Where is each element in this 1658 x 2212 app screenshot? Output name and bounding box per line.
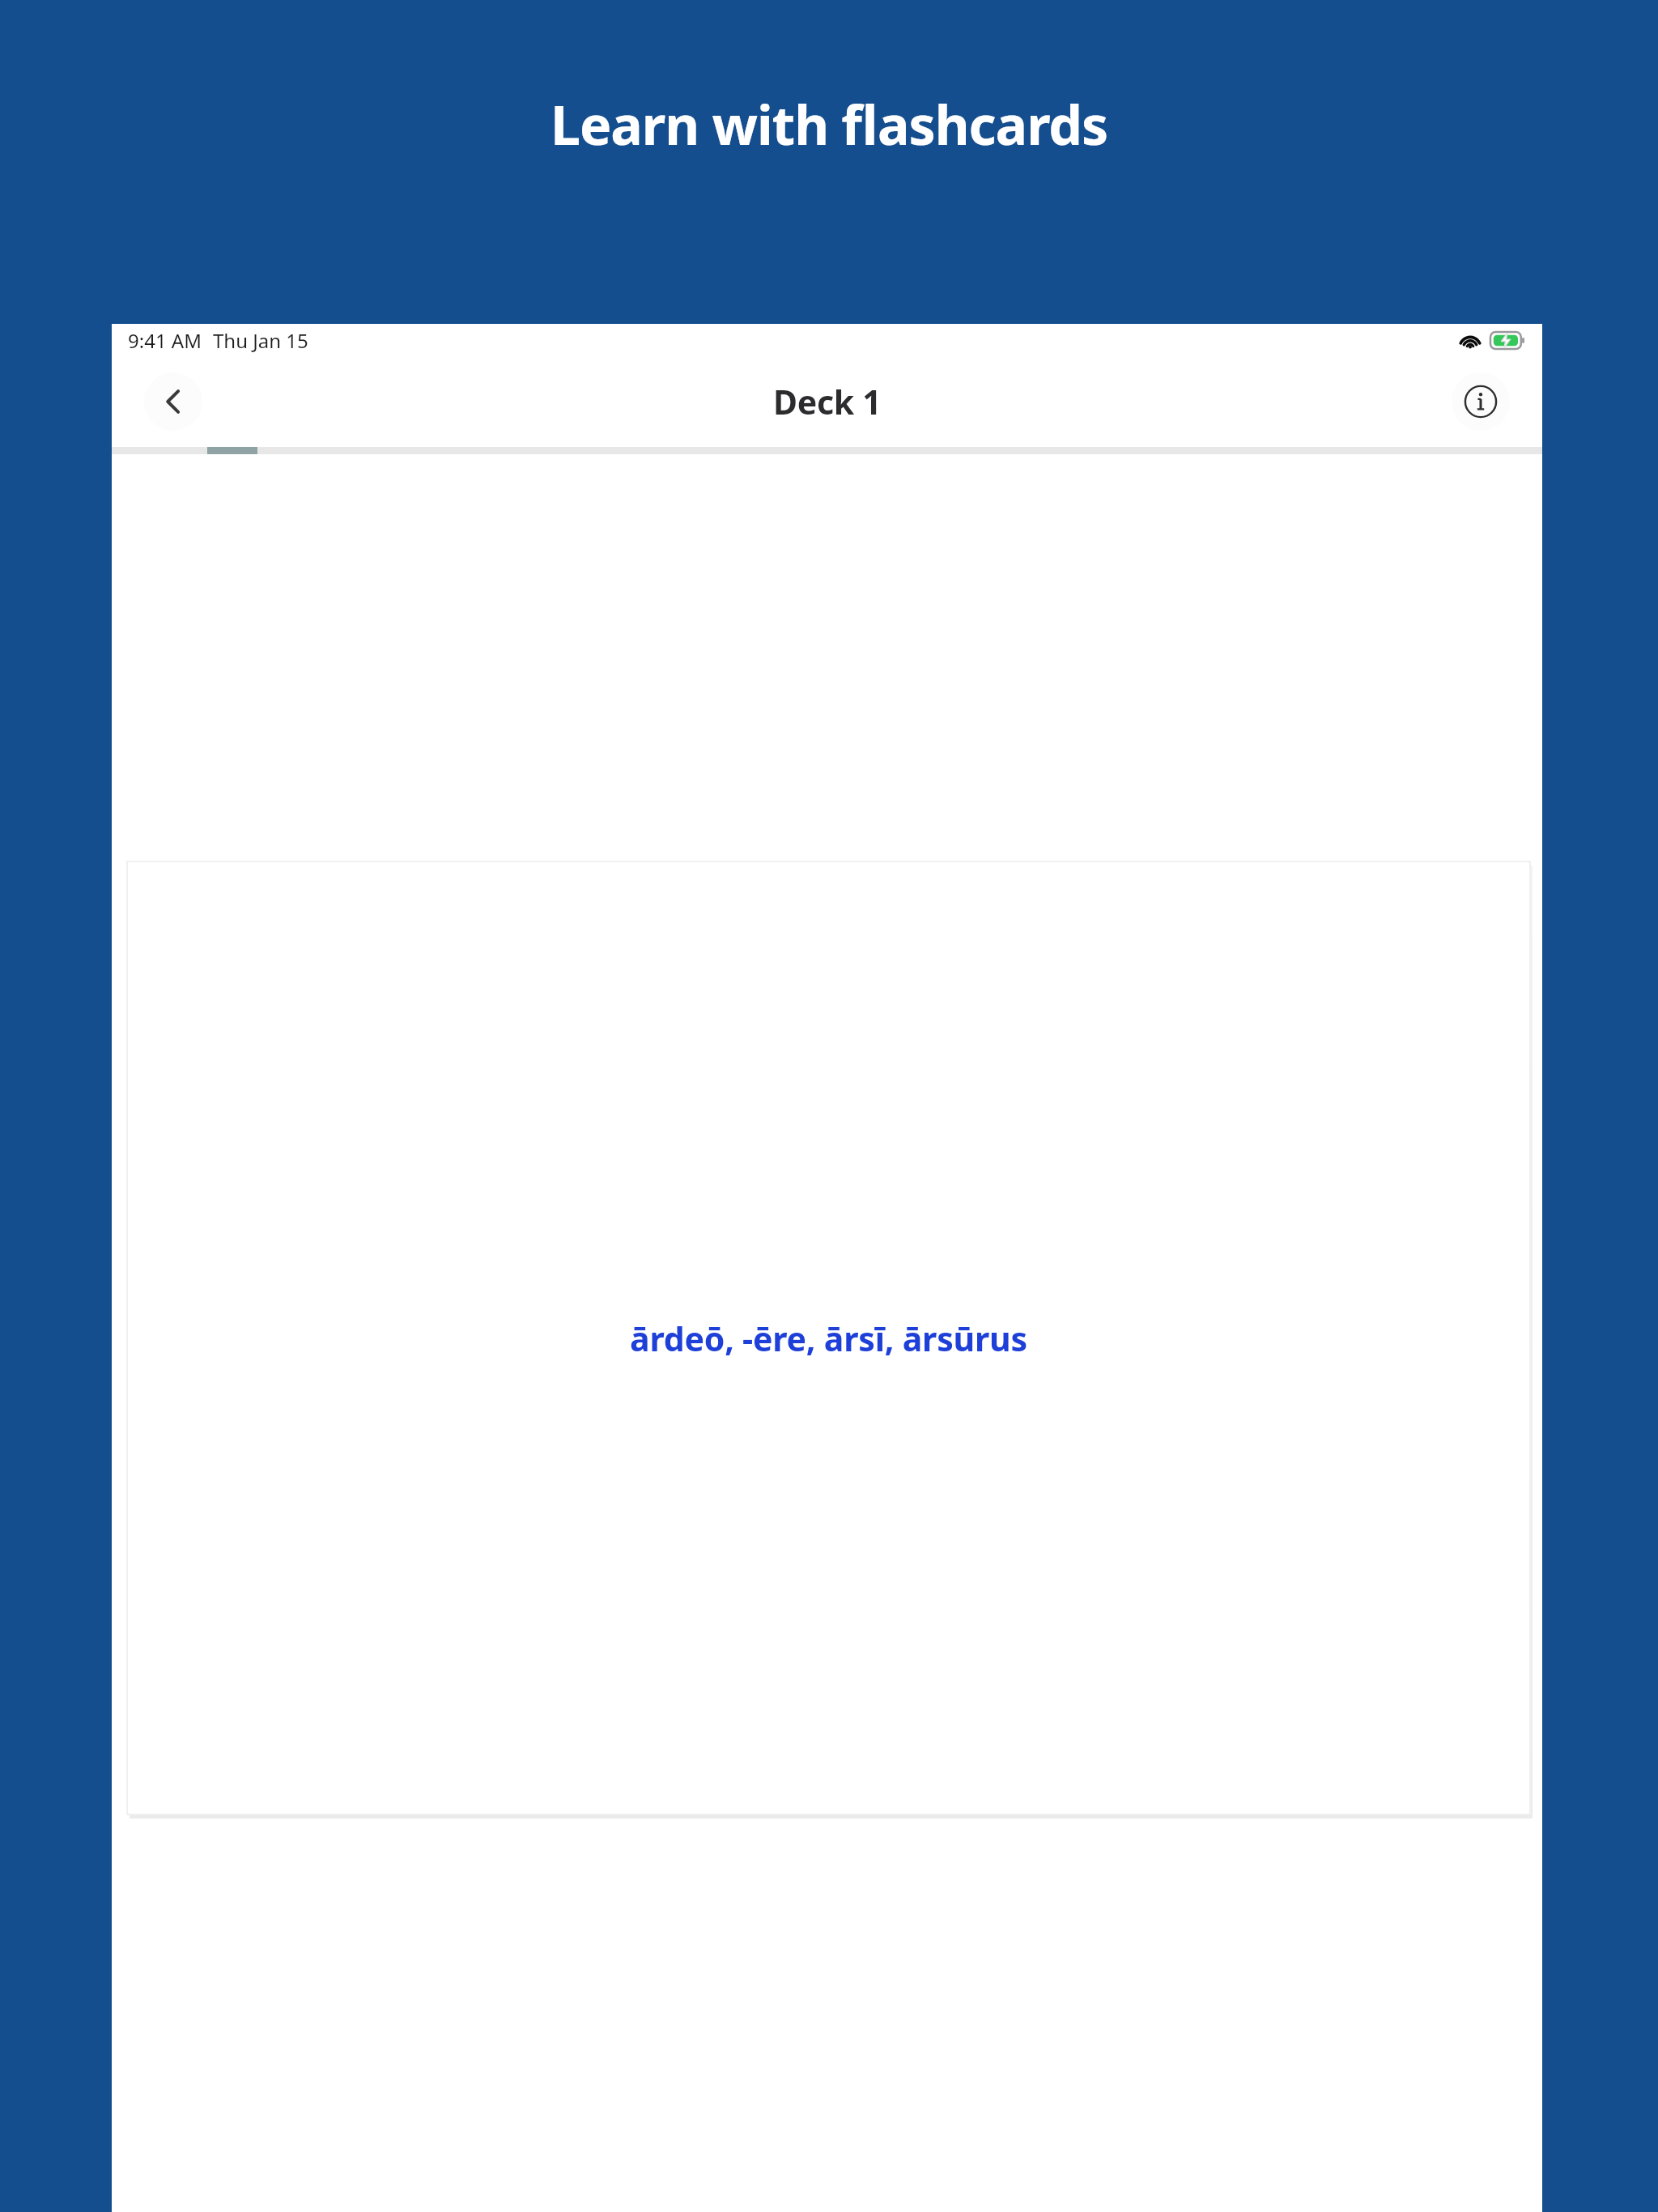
staticText: Learn with flashcards (551, 87, 1108, 160)
button[interactable]: ārdeō, -ēre, ārsī, ārsūrus (127, 861, 1530, 1814)
staticText: Thu Jan 15 (213, 327, 308, 354)
button[interactable]: Information (1452, 372, 1510, 431)
staticText: Deck 1 (773, 379, 882, 424)
staticText: ārdeō, -ēre, ārsī, ārsūrus (630, 1316, 1027, 1361)
button[interactable]: Back (144, 372, 202, 431)
staticText: 9:41 AM (128, 327, 202, 354)
